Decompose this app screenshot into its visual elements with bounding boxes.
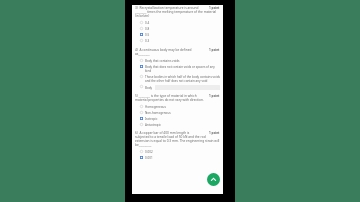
button[interactable]: 0.3 (140, 39, 220, 43)
staticText: 0.002 (145, 150, 220, 154)
staticText: 3) Recrystallization temperature is arou… (135, 6, 209, 10)
staticText: Those bodies in which half of the body c… (145, 75, 220, 83)
button[interactable]: Homogeneous (140, 105, 220, 109)
staticText: subjected to a tensile load of 50 kN and… (135, 135, 220, 147)
staticText: Isotropic (145, 117, 220, 121)
button[interactable]: Isotropic (140, 117, 220, 121)
button[interactable]: Body that contains voids (140, 59, 220, 63)
button[interactable]: Body (140, 85, 220, 90)
staticText: 5) ________ is the type of material in w… (135, 94, 209, 98)
staticText: Body (145, 86, 153, 90)
staticText: Homogeneous (145, 105, 220, 109)
staticText: 1 point (209, 131, 220, 135)
button[interactable]: 0.5 (140, 33, 220, 37)
button[interactable]: Next (207, 173, 220, 186)
staticText: 6) A copper bar of 400 mm length is (135, 131, 209, 135)
staticText: 0.5 (145, 33, 220, 37)
button[interactable]: 0.002 (140, 150, 220, 154)
button[interactable]: Anisotropic (140, 123, 220, 127)
staticText: 1 point (209, 6, 220, 10)
staticText: 1 point (209, 48, 220, 52)
staticText: 0.3 (145, 39, 220, 43)
button[interactable]: 0.001 (140, 156, 220, 160)
staticText: as________ (135, 52, 220, 56)
button[interactable]: 0.8 (140, 27, 220, 31)
button[interactable]: Those bodies in which half of the body c… (140, 75, 220, 83)
staticText: ________ times the melting temperature o… (135, 10, 220, 18)
staticText: Body that contains voids (145, 59, 220, 63)
staticText: material properties do not vary with dir… (135, 98, 220, 102)
staticText: 4) A continuous body may be defined (135, 48, 209, 52)
staticText: 1 point (209, 94, 220, 98)
staticText: Body that does not contain voids or spac… (145, 65, 220, 73)
button[interactable]: Non-homogenous (140, 111, 220, 115)
staticText: 0.001 (145, 156, 220, 160)
staticText: 0.4 (145, 21, 220, 25)
staticText: 0.8 (145, 27, 220, 31)
staticText: Anisotropic (145, 123, 220, 127)
button[interactable]: 0.4 (140, 21, 220, 25)
button[interactable]: Body that does not contain voids or spac… (140, 65, 220, 73)
staticText: Non-homogenous (145, 111, 220, 115)
